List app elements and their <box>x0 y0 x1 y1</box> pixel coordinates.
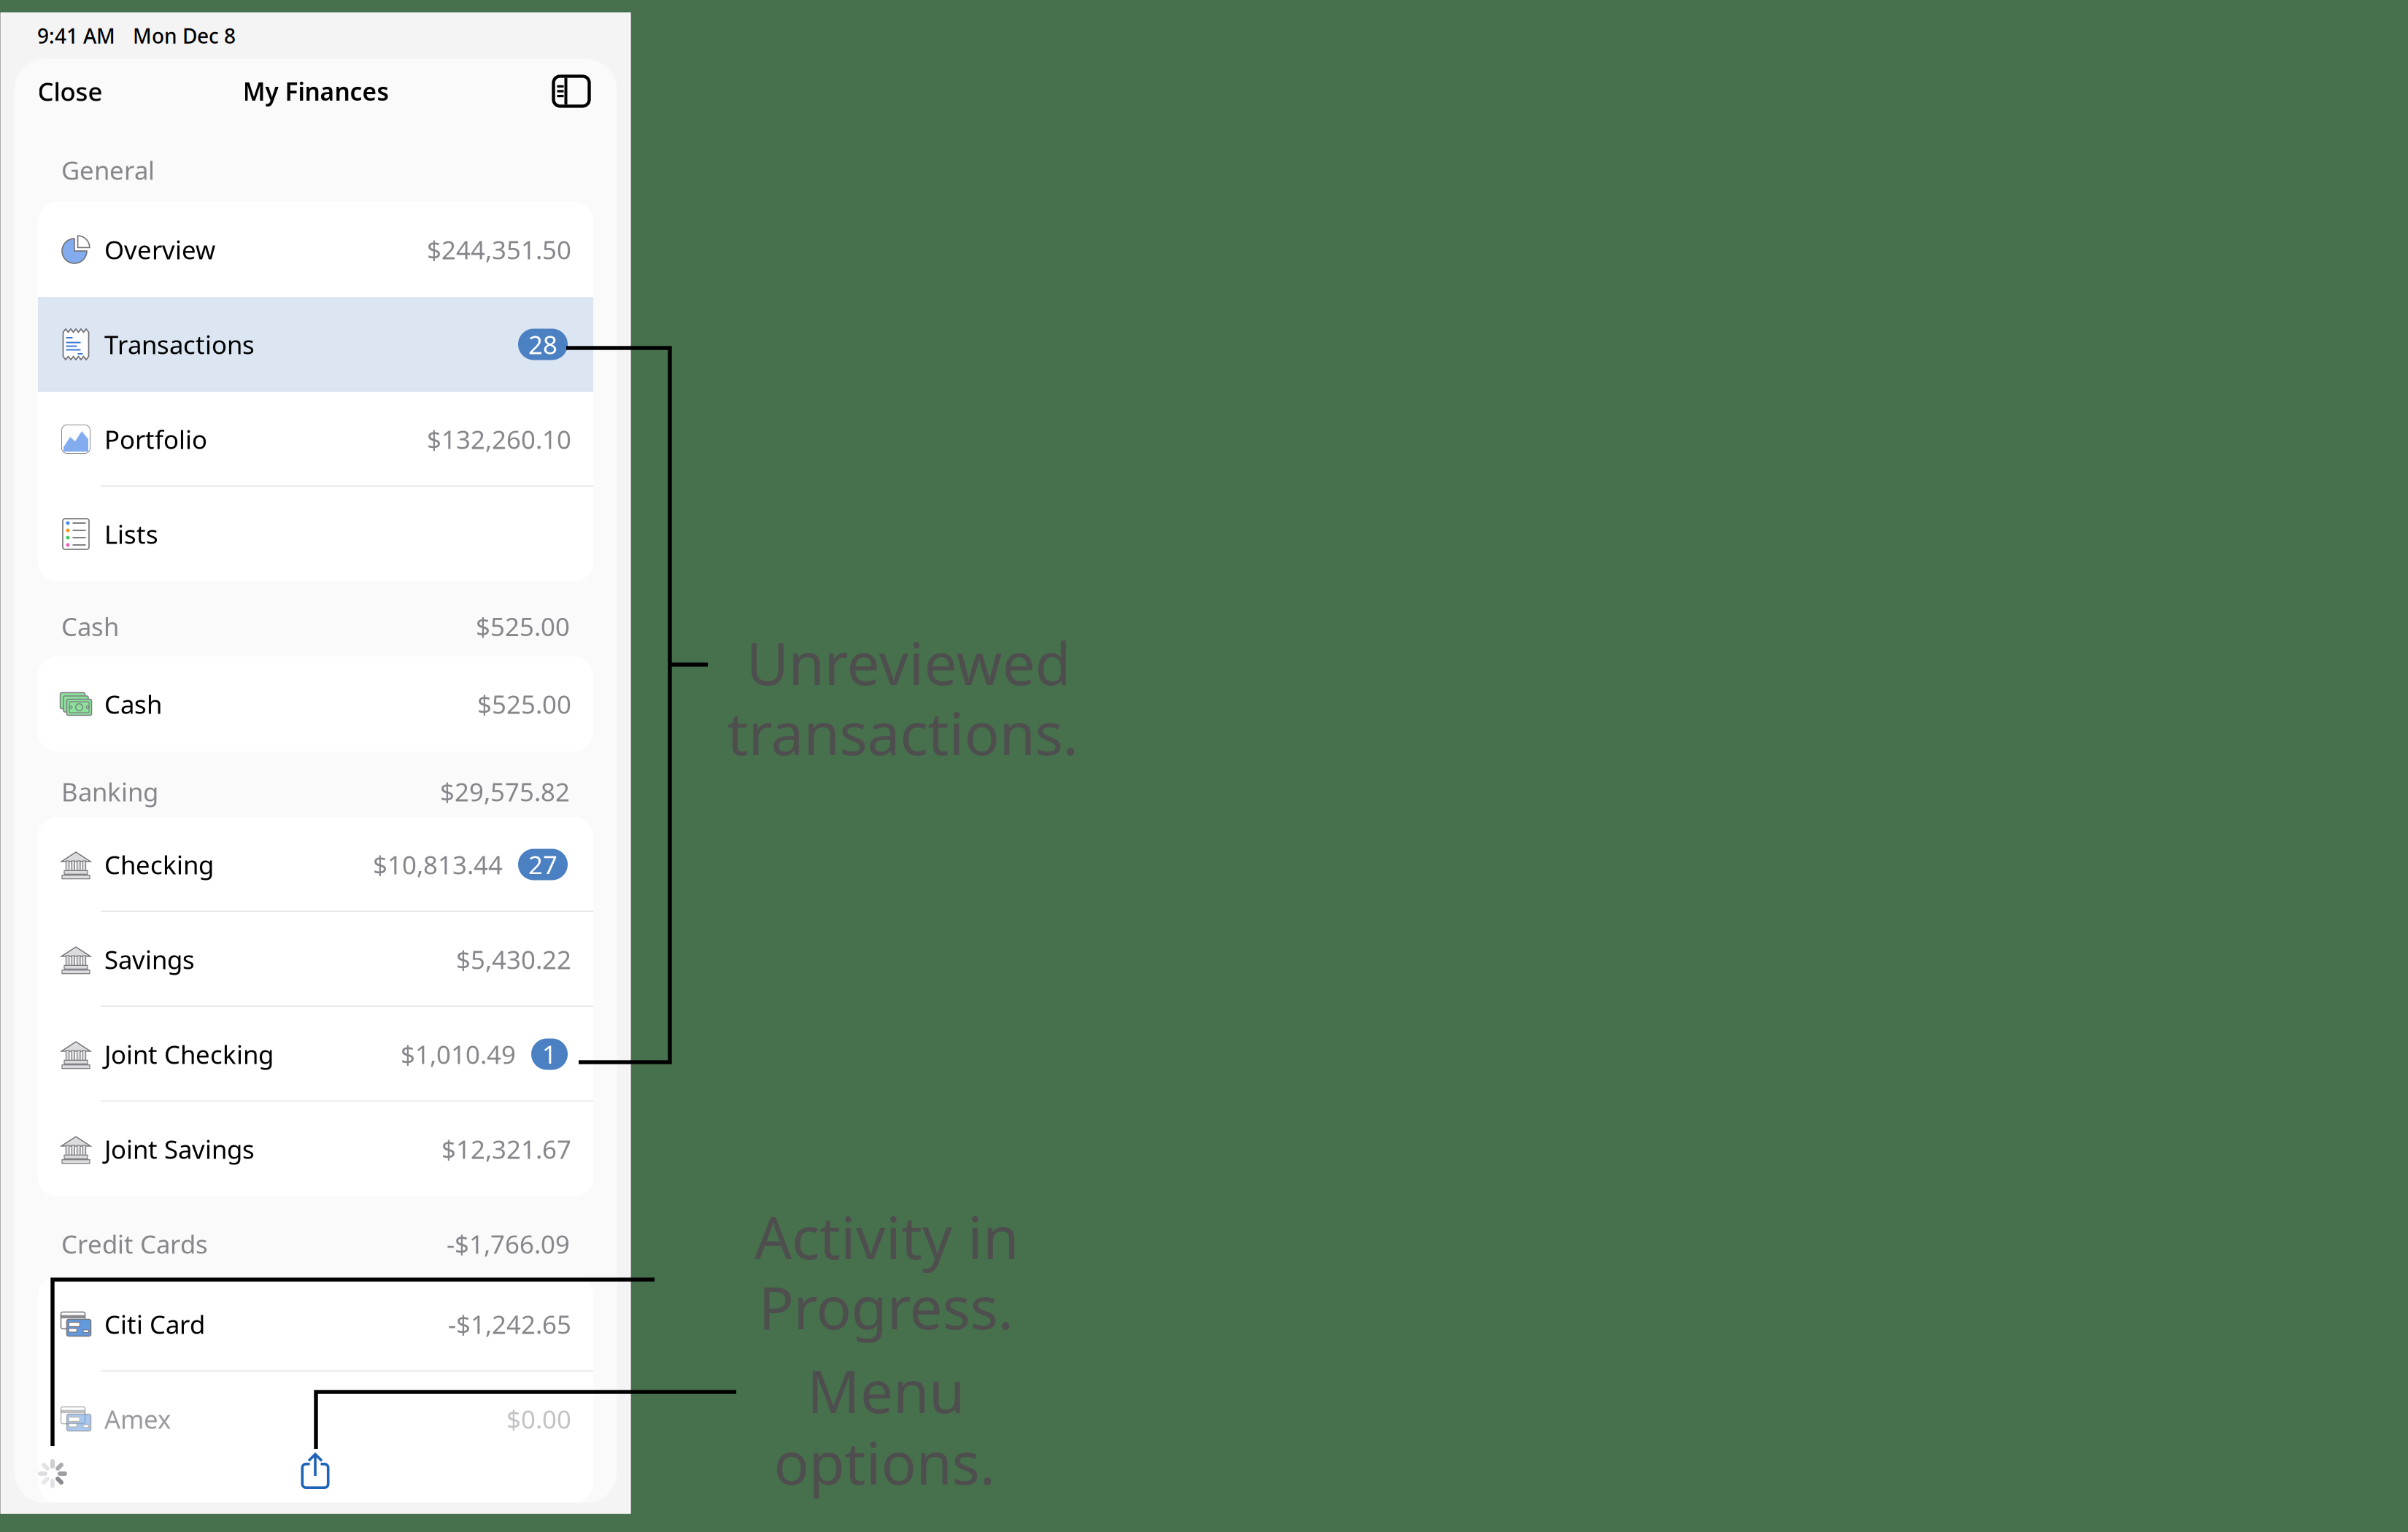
button[interactable]: Lists <box>38 487 593 581</box>
staticText: $5,430.22 <box>456 943 571 976</box>
button[interactable]: Portfolio <box>38 392 593 487</box>
staticText: General <box>61 153 155 187</box>
staticText: 27 <box>528 848 557 881</box>
staticText: Menu <box>807 1352 965 1429</box>
staticText: Transactions <box>104 328 255 361</box>
staticText: -$1,766.09 <box>447 1227 570 1261</box>
staticText: $132,260.10 <box>427 422 571 456</box>
staticText: Activity in <box>755 1198 1019 1275</box>
button[interactable]: Overview <box>38 202 593 297</box>
staticText: Unreviewed <box>746 624 1071 701</box>
staticText: Banking <box>61 775 158 808</box>
staticText: 1 <box>542 1037 557 1071</box>
staticText: Lists <box>104 517 158 551</box>
staticText: $1,010.49 <box>401 1037 516 1071</box>
staticText: 9:41 AM <box>37 22 115 49</box>
staticText: Citi Card <box>104 1307 205 1341</box>
staticText: Joint Savings <box>104 1132 255 1166</box>
staticText: Close <box>38 74 103 108</box>
staticText: Cash <box>61 610 119 643</box>
staticText: Overview <box>104 233 215 266</box>
staticText: transactions. <box>727 694 1078 771</box>
button[interactable]: Joint Checking <box>38 1007 593 1102</box>
staticText: Checking <box>104 848 214 881</box>
staticText: My Finances <box>243 75 389 107</box>
staticText: $29,575.82 <box>440 775 570 808</box>
staticText: Cash <box>104 687 162 721</box>
button[interactable]: Savings <box>38 912 593 1007</box>
staticText: $525.00 <box>476 610 570 643</box>
staticText: $10,813.44 <box>373 848 503 881</box>
staticText: Portfolio <box>104 422 207 456</box>
staticText: Savings <box>104 943 195 976</box>
staticText: -$1,242.65 <box>448 1307 571 1341</box>
button[interactable]: Amex <box>38 1372 593 1466</box>
button[interactable]: Checking <box>38 817 593 912</box>
button[interactable]: Citi Card <box>38 1277 593 1372</box>
staticText: Joint Checking <box>104 1037 274 1071</box>
staticText: Credit Cards <box>61 1227 208 1261</box>
staticText: $244,351.50 <box>427 233 571 266</box>
staticText: Mon Dec 8 <box>133 22 236 49</box>
button[interactable]: Share <box>301 1452 329 1489</box>
button[interactable]: Joint Savings <box>38 1102 593 1196</box>
staticText: options. <box>774 1423 995 1501</box>
staticText: Progress. <box>759 1268 1013 1345</box>
button[interactable]: Close <box>38 69 103 114</box>
staticText: $0.00 <box>506 1402 571 1436</box>
staticText: Amex <box>104 1402 171 1436</box>
staticText: $12,321.67 <box>441 1132 571 1166</box>
button[interactable]: Toggle Sidebar <box>553 76 589 106</box>
button[interactable]: Cash <box>38 657 593 751</box>
staticText: 28 <box>528 328 557 361</box>
staticText: $525.00 <box>477 687 571 721</box>
button[interactable]: Transactions <box>38 297 593 392</box>
